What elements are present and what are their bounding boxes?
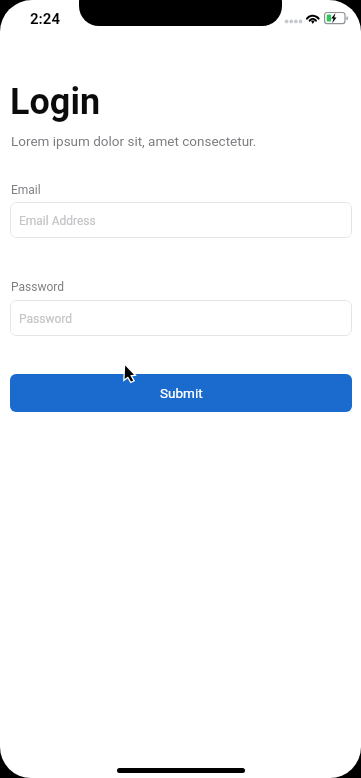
staticText: Login — [10, 81, 101, 123]
staticText: Password — [19, 312, 73, 326]
staticText: 2:24 — [30, 10, 61, 28]
staticText: Email Address — [19, 214, 96, 228]
staticText: Lorem ipsum dolor sit, amet consectetur. — [11, 133, 257, 149]
button[interactable]: Email Address — [10, 202, 352, 238]
staticText: Password — [11, 280, 65, 294]
button[interactable]: Submit — [10, 374, 352, 412]
button[interactable]: Password — [10, 300, 352, 336]
staticText: Email — [11, 183, 41, 197]
staticText: Submit — [160, 385, 203, 401]
